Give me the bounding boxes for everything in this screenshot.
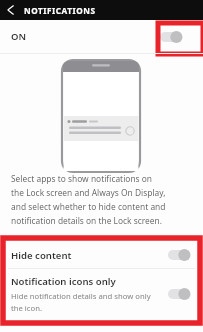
button[interactable]: Toggle [160, 31, 182, 43]
button[interactable]: ON [0, 20, 203, 53]
button[interactable]: Toggle [168, 249, 190, 261]
staticText: Hide notification details and show only [11, 291, 151, 301]
button[interactable]: Toggle [168, 288, 190, 300]
button[interactable]: Back [0, 0, 20, 20]
staticText: notification details on the Lock screen. [11, 215, 163, 226]
staticText: the icon. [11, 303, 42, 313]
staticText: NOTIFICATIONS [24, 5, 96, 16]
staticText: Notification icons only [11, 275, 116, 288]
staticText: Select apps to show notifications on [11, 173, 153, 184]
staticText: and select whether to hide content and [11, 201, 166, 212]
staticText: ON [11, 30, 27, 43]
staticText: Hide content [11, 249, 72, 262]
button[interactable]: Hide content [0, 242, 203, 268]
staticText: the Lock screen and Always On Display, [11, 187, 166, 198]
button[interactable]: Notification icons only [0, 269, 203, 319]
